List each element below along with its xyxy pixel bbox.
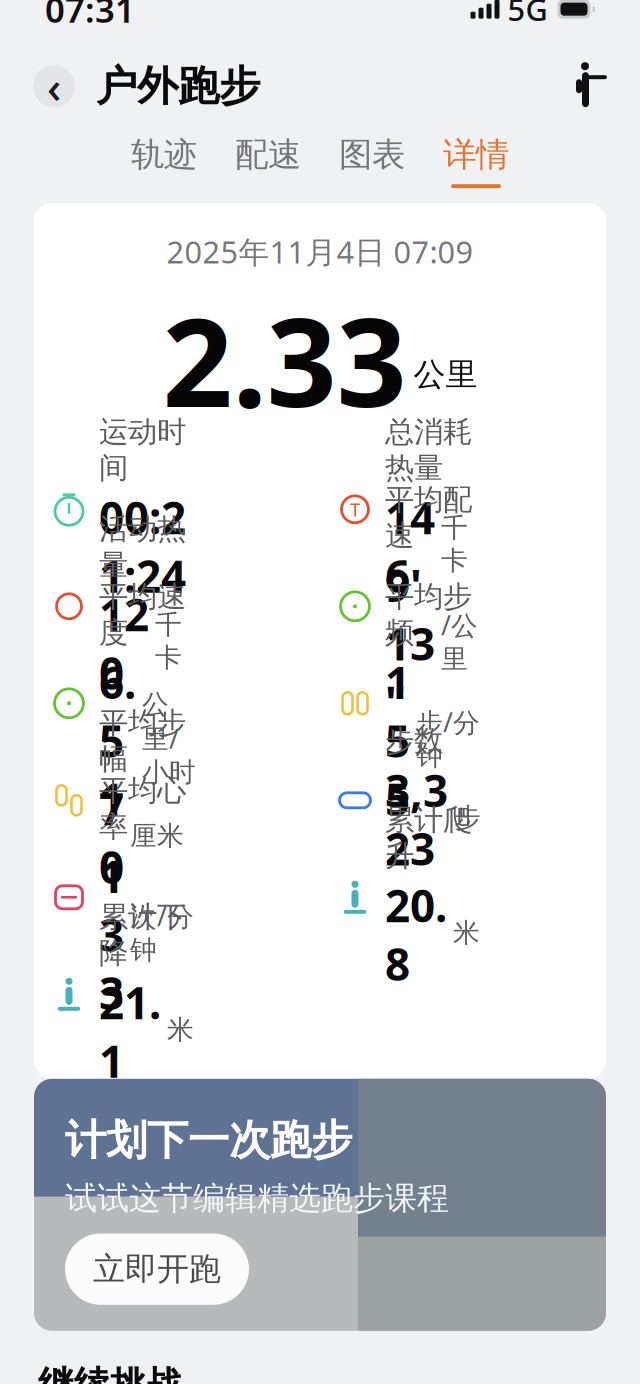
staticText: 步 bbox=[454, 802, 481, 834]
staticText: 3,323 bbox=[385, 761, 448, 878]
button[interactable]: 配速 bbox=[216, 133, 320, 189]
staticText: 2025年11月4日 07:09 bbox=[166, 231, 473, 272]
staticText: 平均速度 bbox=[99, 579, 186, 651]
staticText: 试试这节编辑精选跑步课程 bbox=[65, 1179, 449, 1218]
button[interactable]: 轨迹 bbox=[112, 133, 216, 189]
staticText: 立即开跑 bbox=[93, 1249, 221, 1289]
staticText: 平均步频 bbox=[385, 579, 472, 651]
staticText: 2.33 bbox=[162, 278, 406, 441]
staticText: 133 bbox=[99, 847, 124, 1022]
staticText: 步/分钟 bbox=[416, 704, 480, 772]
staticText: 步数 bbox=[385, 723, 443, 759]
staticText: ‹ bbox=[47, 57, 61, 115]
staticText: 运动时间 bbox=[99, 414, 186, 486]
button[interactable]: 返回 bbox=[33, 65, 75, 107]
staticText: 详情 bbox=[443, 134, 509, 175]
staticText: 平均配速 bbox=[385, 482, 472, 554]
button[interactable]: 计划下一次跑步 bbox=[34, 1079, 606, 1331]
staticText: 活动热量 bbox=[99, 511, 186, 583]
staticText: /公里 bbox=[441, 607, 478, 675]
staticText: 公里/小时 bbox=[142, 688, 196, 789]
staticText: 21.1 bbox=[99, 973, 161, 1090]
button[interactable]: 详情 bbox=[424, 133, 528, 189]
staticText: 厘米 bbox=[130, 820, 184, 852]
staticText: 总消耗热量 bbox=[385, 414, 472, 486]
staticText: 20.8 bbox=[385, 876, 447, 993]
staticText: 户外跑步 bbox=[96, 61, 260, 112]
staticText: 配速 bbox=[235, 134, 301, 175]
staticText: 计划下一次跑步 bbox=[65, 1115, 352, 1166]
staticText: 次/分钟 bbox=[130, 898, 194, 966]
button[interactable]: 立即开跑 bbox=[65, 1233, 249, 1305]
staticText: 图表 bbox=[339, 134, 405, 175]
button[interactable]: 图表 bbox=[320, 133, 424, 189]
staticText: 155 bbox=[385, 653, 410, 828]
staticText: 累计爬升 bbox=[385, 802, 472, 874]
staticText: 5G bbox=[507, 0, 547, 30]
staticText: 千卡 bbox=[441, 512, 468, 577]
staticText: 70 bbox=[99, 779, 124, 896]
staticText: 146 bbox=[385, 488, 435, 605]
staticText: 120 bbox=[99, 585, 149, 702]
staticText: 6.51 bbox=[99, 653, 136, 828]
staticText: 米 bbox=[453, 917, 480, 949]
staticText: 9'13" bbox=[385, 556, 435, 731]
staticText: 平均心率 bbox=[99, 773, 186, 845]
staticText: 平均步幅 bbox=[99, 705, 186, 777]
staticText: T bbox=[350, 497, 360, 522]
staticText: 00:21:24 bbox=[99, 488, 186, 605]
staticText: 累计下降 bbox=[99, 899, 186, 971]
staticText: 米 bbox=[167, 1014, 194, 1046]
staticText: 公里 bbox=[413, 355, 477, 394]
staticText: 继续挑战 bbox=[38, 1363, 182, 1384]
staticText: 07:31 bbox=[45, 0, 135, 32]
staticText: 千卡 bbox=[155, 609, 182, 674]
staticText: 轨迹 bbox=[131, 134, 197, 175]
button[interactable]: 运动类型 bbox=[573, 62, 607, 110]
